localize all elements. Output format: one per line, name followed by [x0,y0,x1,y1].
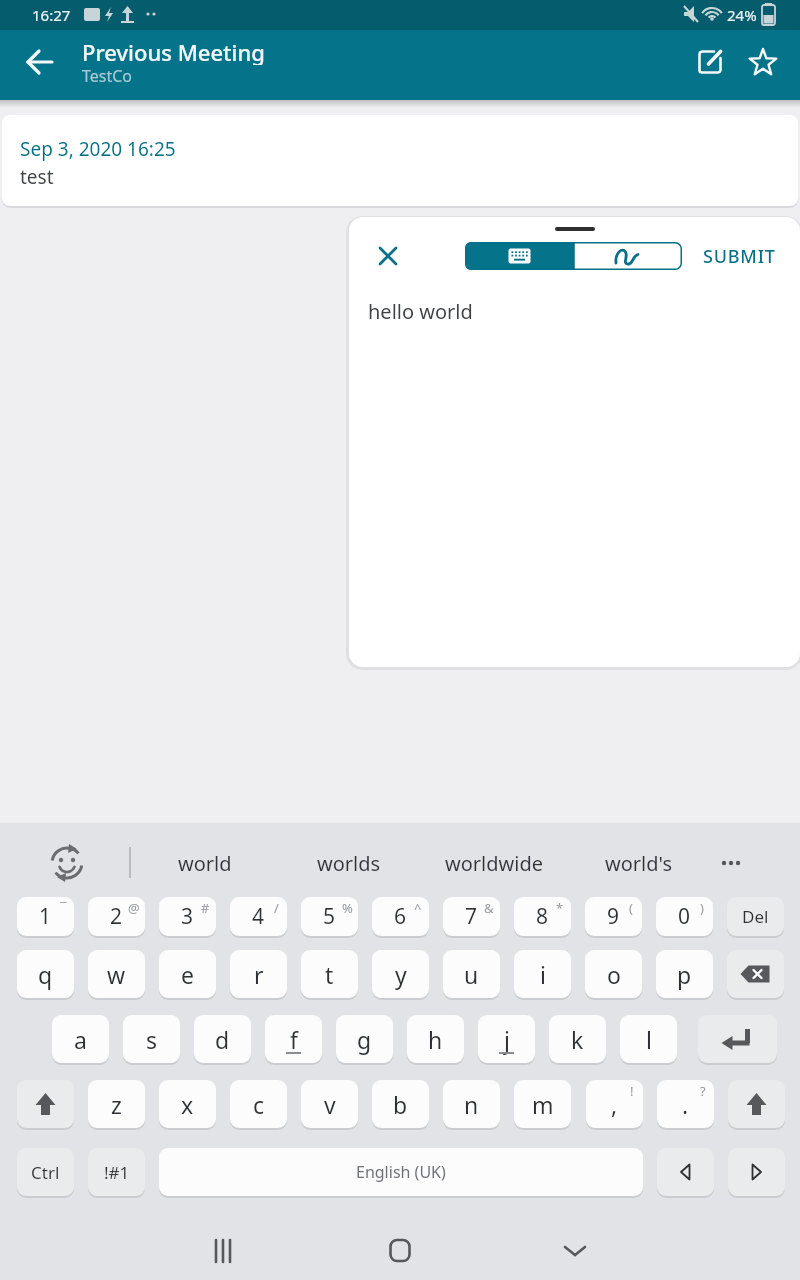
staticText: world [178,850,232,877]
button[interactable]: k [549,1015,606,1063]
button[interactable]: t [301,950,358,998]
button[interactable]: j [478,1015,535,1063]
staticText: 6 [394,902,407,931]
staticText: TestCo [82,65,133,85]
button[interactable]: y [372,950,429,998]
button[interactable]: e [159,950,216,998]
button[interactable]: i [514,950,571,998]
staticText: g [357,1024,372,1055]
button[interactable] [465,242,574,270]
staticText: test [20,164,54,190]
staticText: f [290,1024,298,1055]
button[interactable]: Sep 3, 2020 16:25 [2,115,798,206]
button[interactable]: 9 [585,897,642,936]
button[interactable]: world's [589,845,689,881]
staticText: d [215,1024,230,1055]
button[interactable] [371,239,405,273]
button[interactable]: w [88,950,145,998]
staticText: q [38,959,53,990]
staticText: # [201,899,210,915]
button[interactable]: Ctrl [17,1148,74,1196]
button[interactable]: r [230,950,287,998]
staticText: hello world [368,298,473,325]
button[interactable] [727,950,784,998]
button[interactable]: x [159,1080,216,1128]
button[interactable] [739,38,787,86]
staticText: Previous Meeting [82,37,265,65]
button[interactable]: z [88,1080,145,1128]
button[interactable] [698,1015,777,1063]
staticText: 3 [181,902,194,931]
button[interactable]: q [17,950,74,998]
staticText: 5 [323,902,336,931]
button[interactable]: SUBMIT [694,242,784,270]
staticText: 7 [465,902,478,931]
button[interactable]: f [265,1015,322,1063]
button[interactable]: v [301,1080,358,1128]
staticText: !#1 [104,1161,130,1184]
button[interactable]: 6 [372,897,429,936]
button[interactable]: a [52,1015,109,1063]
staticText: ‾ [60,899,67,915]
button[interactable]: b [372,1080,429,1128]
button[interactable]: 4 [230,897,287,936]
staticText: , [611,1089,618,1120]
button[interactable] [574,242,682,270]
staticText: a [74,1024,87,1055]
staticText: 8 [536,902,549,931]
button[interactable] [16,38,64,86]
button[interactable]: c [230,1080,287,1128]
staticText: / [274,899,279,915]
staticText: l [646,1024,652,1055]
button[interactable]: 7 [443,897,500,936]
staticText: ( [629,899,633,915]
button[interactable] [728,1080,785,1128]
button[interactable]: . [657,1080,714,1128]
button[interactable]: n [443,1080,500,1128]
button[interactable]: , [586,1080,643,1128]
staticText: worldwide [445,850,543,877]
button[interactable] [375,1226,425,1276]
staticText: 9 [607,902,620,931]
staticText: x [181,1089,194,1120]
staticText: 24% [727,5,757,25]
button[interactable]: d [194,1015,251,1063]
button[interactable]: m [514,1080,571,1128]
button[interactable] [706,845,756,881]
button[interactable]: Del [727,897,784,936]
button[interactable]: u [443,950,500,998]
staticText: 2 [110,902,123,931]
button[interactable] [686,38,734,86]
button[interactable]: h [407,1015,464,1063]
button[interactable]: 8 [514,897,571,936]
staticText: ^ [414,899,422,915]
button[interactable]: o [585,950,642,998]
staticText: 4 [252,902,265,931]
button[interactable]: p [656,950,713,998]
button[interactable] [159,1148,643,1196]
staticText: worlds [317,850,381,877]
button[interactable]: 3 [159,897,216,936]
button[interactable]: worldwide [434,845,554,881]
staticText: c [253,1089,265,1120]
button[interactable] [17,1080,74,1128]
button[interactable]: 0 [656,897,713,936]
staticText: k [571,1024,584,1055]
button[interactable]: 1 [17,897,74,936]
button[interactable]: 5 [301,897,358,936]
button[interactable]: world [155,845,255,881]
button[interactable] [657,1148,714,1196]
button[interactable] [550,1226,600,1276]
staticText: v [324,1089,336,1120]
button[interactable] [40,836,94,890]
button[interactable]: g [336,1015,393,1063]
button[interactable]: worlds [299,845,399,881]
button[interactable]: 2 [88,897,145,936]
button[interactable] [200,1226,250,1276]
button[interactable]: !#1 [88,1148,145,1196]
button[interactable] [728,1148,785,1196]
button[interactable]: l [620,1015,677,1063]
staticText: s [146,1024,158,1055]
button[interactable]: s [123,1015,180,1063]
staticText: % [342,899,353,915]
